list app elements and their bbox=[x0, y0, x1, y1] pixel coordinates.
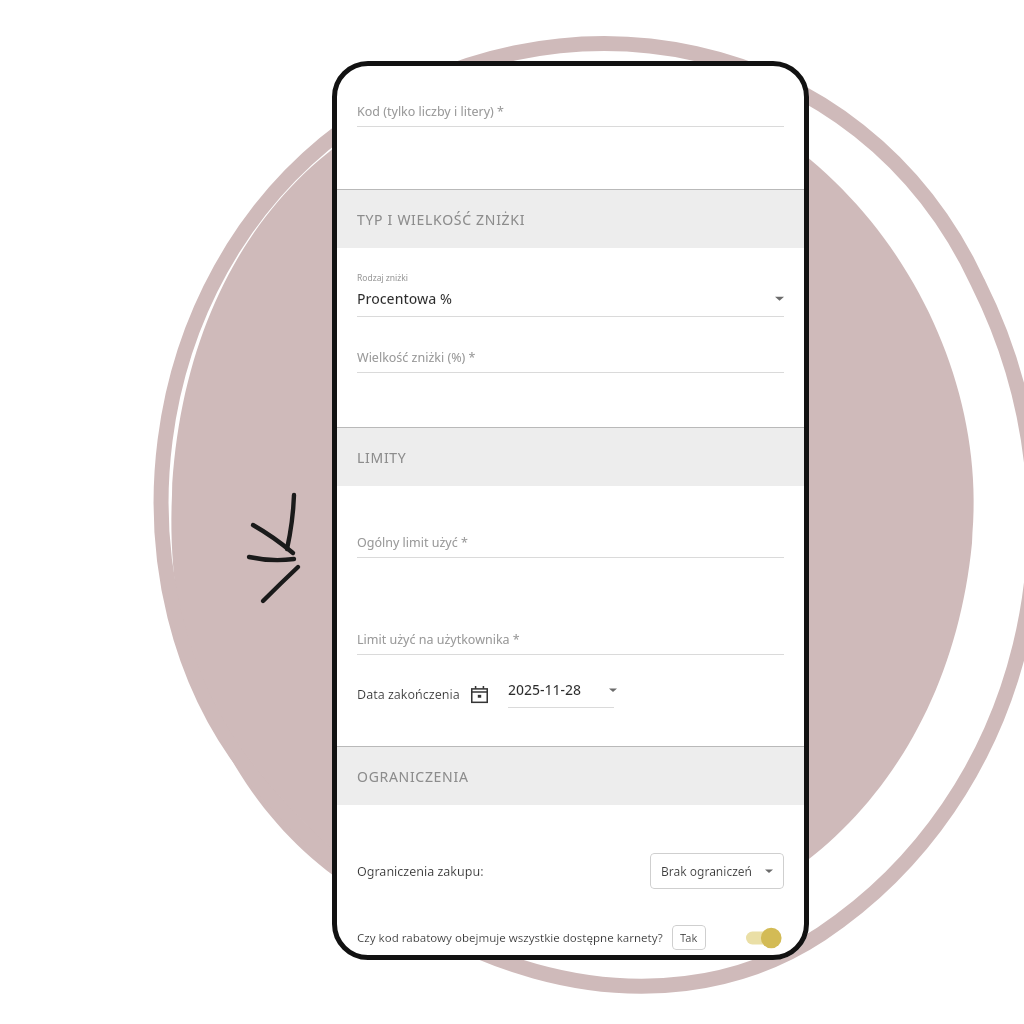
staticText: LIMITY bbox=[357, 448, 407, 467]
button[interactable]: OGRANICZENIA bbox=[332, 747, 809, 805]
staticText: Brak ograniczeń bbox=[661, 863, 752, 879]
staticText: OGRANICZENIA bbox=[357, 767, 469, 786]
button[interactable]: TYP I WIELKOŚĆ ZNIŻKI bbox=[332, 190, 809, 248]
button[interactable]: Brak ograniczeń bbox=[650, 853, 784, 889]
button[interactable]: Tak bbox=[672, 925, 706, 950]
button[interactable]: Kod (tylko liczby i litery) * bbox=[357, 103, 784, 127]
button[interactable]: Czy kod rabatowy obejmuje wszystkie dost… bbox=[357, 925, 784, 950]
staticText: Wielkość zniżki (%) * bbox=[357, 349, 476, 366]
button[interactable]: LIMITY bbox=[332, 428, 809, 486]
staticText: Kod (tylko liczby i litery) * bbox=[357, 103, 504, 120]
button[interactable]: Przełącznik włączony bbox=[746, 927, 784, 949]
button[interactable]: Data zakończenia bbox=[357, 680, 784, 708]
staticText: Limit użyć na użytkownika * bbox=[357, 631, 520, 648]
staticText: Ograniczenia zakupu: bbox=[357, 863, 484, 880]
staticText: Ogólny limit użyć * bbox=[357, 534, 468, 551]
button[interactable]: Limit użyć na użytkownika * bbox=[357, 631, 784, 655]
button[interactable]: Wielkość zniżki (%) * bbox=[357, 349, 784, 373]
staticText: TYP I WIELKOŚĆ ZNIŻKI bbox=[357, 210, 526, 229]
staticText: Tak bbox=[680, 930, 698, 945]
staticText: Data zakończenia bbox=[357, 686, 460, 703]
staticText: Czy kod rabatowy obejmuje wszystkie dost… bbox=[357, 930, 663, 946]
staticText: Procentowa % bbox=[357, 289, 775, 308]
staticText: 2025-11-28 bbox=[508, 680, 582, 699]
button[interactable]: Ogólny limit użyć * bbox=[357, 534, 784, 558]
button[interactable]: Wybierz datę bbox=[471, 686, 488, 703]
staticText: Rodzaj zniżki bbox=[357, 272, 408, 284]
button[interactable]: Rodzaj zniżki bbox=[357, 272, 784, 317]
